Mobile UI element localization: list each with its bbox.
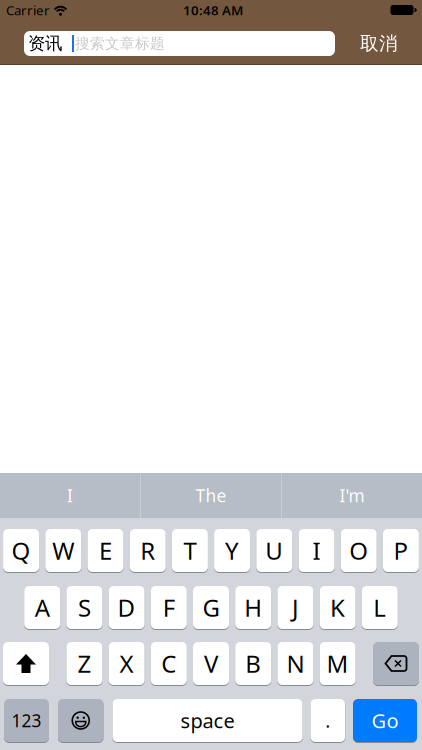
staticText: K [330,592,345,623]
button[interactable]: . [310,699,345,742]
button[interactable]: E [87,529,123,572]
button[interactable]: Shift [3,642,49,685]
staticText: 取消 [360,32,398,55]
button[interactable]: D [109,586,145,629]
staticText: M [327,648,349,679]
button[interactable]: space [112,699,302,742]
button[interactable]: Emoji [58,699,103,742]
staticText: N [286,648,304,679]
staticText: The [195,484,226,507]
staticText: G [202,592,219,623]
button[interactable]: V [193,642,229,685]
button[interactable]: I [298,529,334,572]
staticText: V [204,648,218,679]
staticText: Go [371,707,398,734]
button[interactable]: T [172,529,208,572]
button[interactable]: J [277,586,313,629]
staticText: 10:48 AM [183,1,243,19]
button[interactable]: K [320,586,356,629]
button[interactable]: Delete [373,642,419,685]
staticText: Carrier [6,1,50,19]
staticText: 搜索文章标题 [75,34,165,52]
staticText: Y [225,535,239,566]
staticText: O [349,535,368,566]
staticText: S [78,592,91,623]
staticText: D [118,592,136,623]
button[interactable]: Go [353,699,417,742]
staticText: I'm [339,484,364,507]
button[interactable]: W [45,529,81,572]
button[interactable]: C [151,642,187,685]
staticText: L [373,592,386,623]
button[interactable]: O [341,529,377,572]
button[interactable]: Search [24,31,335,56]
staticText: 资讯 [28,33,62,54]
button[interactable]: 123 [4,699,49,742]
button[interactable]: Q [3,529,39,572]
button[interactable]: 取消 [360,32,398,55]
staticText: H [244,592,262,623]
button[interactable]: M [320,642,356,685]
button[interactable]: R [130,529,166,572]
button[interactable]: G [193,586,229,629]
button[interactable]: The [141,473,281,518]
button[interactable]: U [256,529,292,572]
button[interactable]: X [109,642,145,685]
button[interactable]: N [277,642,313,685]
staticText: X [120,648,134,679]
staticText: P [393,535,408,566]
staticText: Z [77,648,91,679]
staticText: Q [12,535,31,566]
button[interactable]: I'm [282,473,422,518]
staticText: C [161,648,176,679]
button[interactable]: Y [214,529,250,572]
button[interactable]: P [383,529,419,572]
button[interactable]: H [235,586,271,629]
button[interactable]: Z [66,642,102,685]
staticText: A [35,592,50,623]
button[interactable]: B [235,642,271,685]
staticText: F [163,592,175,623]
button[interactable]: I [0,473,140,518]
staticText: R [140,535,155,566]
button[interactable]: S [66,586,102,629]
button[interactable]: A [24,586,60,629]
staticText: T [183,535,196,566]
staticText: 123 [11,709,41,732]
staticText: space [180,707,234,734]
staticText: W [52,535,74,566]
staticText: B [245,648,261,679]
staticText: U [265,535,283,566]
staticText: . [325,708,330,733]
staticText: I [67,484,73,507]
button[interactable]: F [151,586,187,629]
button[interactable]: L [362,586,398,629]
staticText: J [292,592,299,623]
staticText: I [312,535,320,566]
staticText: E [99,535,112,566]
